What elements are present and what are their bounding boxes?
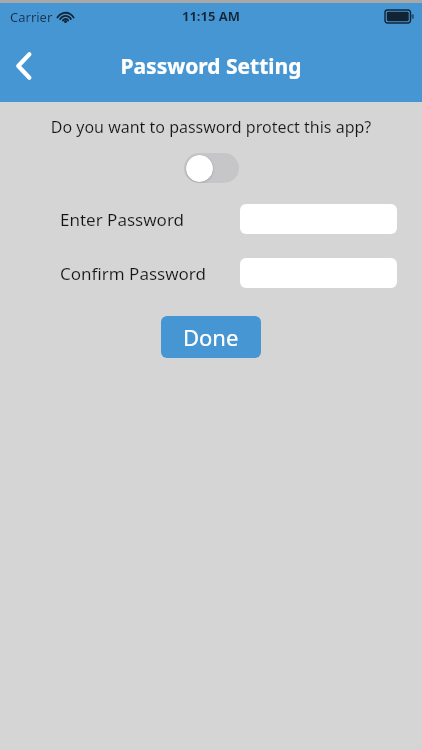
staticText: Password Setting <box>120 52 302 81</box>
staticText: 11:15 AM <box>182 7 241 25</box>
staticText: Enter Password <box>60 208 185 231</box>
button[interactable]: Password protection toggle <box>184 153 239 183</box>
staticText: Done <box>183 322 239 352</box>
button[interactable]: Back <box>0 42 48 90</box>
button[interactable]: Enter Password <box>240 204 397 234</box>
button[interactable]: Done <box>161 316 261 358</box>
staticText: Do you want to password protect this app… <box>0 116 422 138</box>
staticText: Confirm Password <box>60 262 206 285</box>
button[interactable]: Confirm Password <box>240 258 397 288</box>
staticText: Carrier <box>10 8 53 26</box>
